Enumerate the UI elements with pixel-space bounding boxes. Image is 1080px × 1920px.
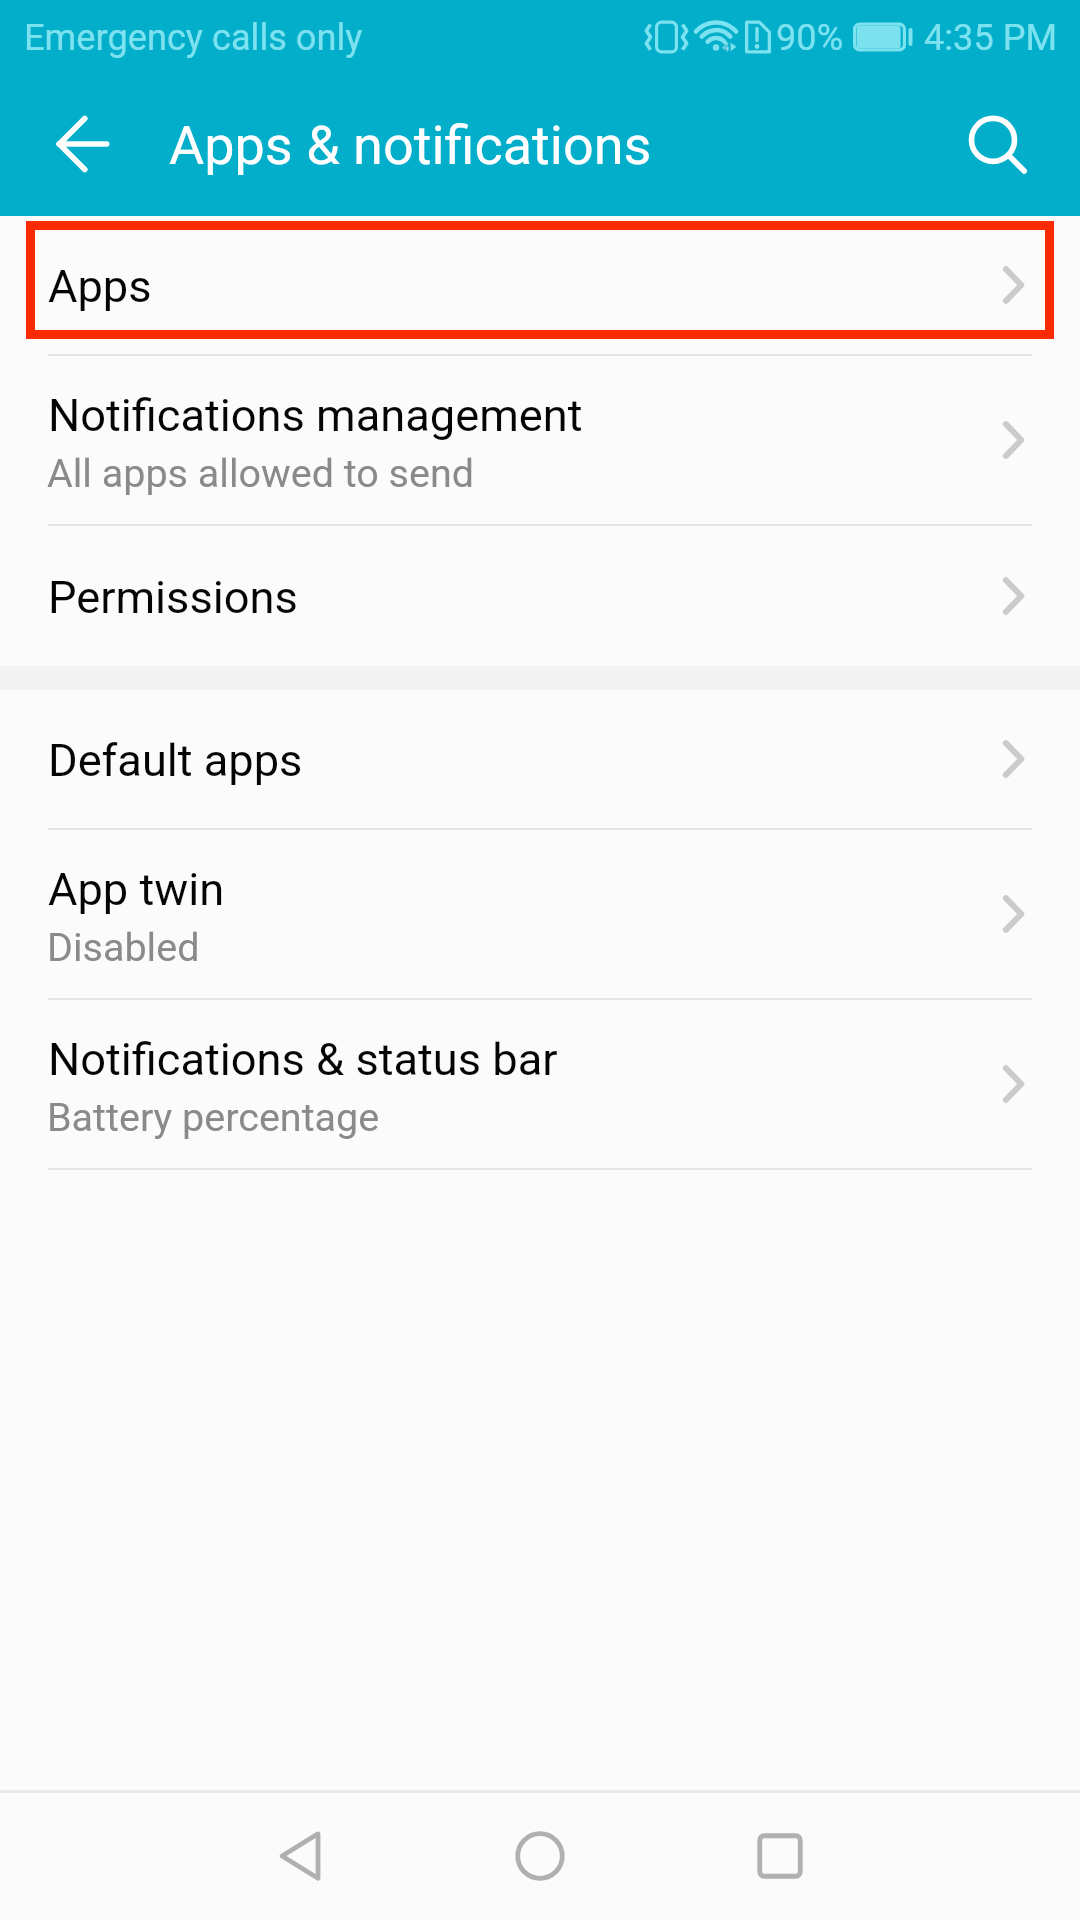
button[interactable]: Notifications management: [0, 356, 1080, 524]
staticText: 4:35 PM: [924, 16, 1058, 58]
staticText: 90%: [776, 16, 844, 58]
button[interactable]: Recents: [720, 1793, 840, 1920]
button[interactable]: Default apps: [0, 690, 1080, 828]
staticText: Default apps: [48, 734, 303, 787]
button[interactable]: App twin: [0, 830, 1080, 998]
staticText: Emergency calls only: [24, 16, 363, 58]
staticText: App twin: [48, 863, 225, 916]
staticText: Permissions: [48, 571, 298, 624]
staticText: Disabled: [47, 924, 200, 970]
button[interactable]: Apps: [0, 216, 1080, 354]
staticText: Apps: [48, 260, 152, 313]
button[interactable]: Search: [938, 89, 1048, 199]
button[interactable]: Back: [28, 89, 138, 199]
staticText: Battery percentage: [47, 1094, 380, 1140]
button[interactable]: Home: [480, 1793, 600, 1920]
staticText: Notifications & status bar: [48, 1033, 558, 1086]
button[interactable]: Back: [240, 1793, 360, 1920]
button[interactable]: Notifications & status bar: [0, 1000, 1080, 1168]
button[interactable]: Permissions: [0, 526, 1080, 666]
staticText: Apps & notifications: [169, 114, 652, 177]
staticText: All apps allowed to send: [47, 450, 475, 496]
staticText: Notifications management: [48, 389, 583, 442]
